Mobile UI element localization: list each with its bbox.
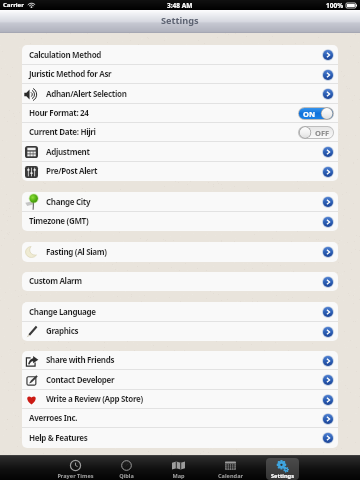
staticText: Contact Developer <box>46 374 115 385</box>
staticText: Help & Features <box>29 432 88 443</box>
staticText: 100% <box>326 1 344 10</box>
button[interactable]: Hour Format: 24 <box>22 104 338 123</box>
other: Open <box>322 88 334 100</box>
staticText: Calculation Method <box>29 49 102 60</box>
staticText: Qibla <box>119 472 134 480</box>
staticText: Juristic Method for Asr <box>29 68 112 79</box>
staticText: Averroes Inc. <box>29 412 78 423</box>
other: Open <box>322 246 334 258</box>
staticText: Map <box>172 472 185 480</box>
staticText: Settings <box>161 14 199 27</box>
staticText: Change Language <box>29 306 96 317</box>
staticText: OFF <box>315 128 330 138</box>
staticText: Share with Friends <box>46 354 115 365</box>
staticText: Pre/Post Alert <box>46 165 98 176</box>
staticText: Prayer Times <box>57 472 94 480</box>
other: Open <box>322 413 334 425</box>
staticText: ON <box>303 109 316 119</box>
staticText: 3:48 AM <box>167 1 193 10</box>
button[interactable]: Averroes Inc. <box>22 409 338 428</box>
staticText: Adjustment <box>46 146 90 157</box>
button[interactable]: Settings <box>256 455 308 480</box>
button[interactable]: Calculation Method <box>22 45 338 65</box>
other: Open <box>322 69 334 81</box>
button[interactable]: Qibla <box>101 455 152 480</box>
other: Open <box>322 146 334 158</box>
other: Open <box>322 432 334 444</box>
button[interactable]: Map <box>152 455 204 480</box>
staticText: Settings <box>271 472 294 480</box>
other: Open <box>322 355 334 367</box>
button[interactable]: Share with Friends <box>22 351 338 370</box>
other: Open <box>322 374 334 386</box>
other: Open <box>322 49 334 61</box>
staticText: Hour Format: 24 <box>29 107 89 118</box>
staticText: Adhan/Alert Selection <box>46 88 127 99</box>
button[interactable]: Timezone (GMT) <box>22 212 338 231</box>
button[interactable]: Write a Review (App Store) <box>22 390 338 409</box>
staticText: Change City <box>46 196 91 207</box>
staticText: Fasting (Al Siam) <box>46 246 107 257</box>
staticText: Calendar <box>218 472 243 480</box>
button[interactable]: Juristic Method for Asr <box>22 65 338 84</box>
button[interactable]: Prayer Times <box>50 455 101 480</box>
staticText: Custom Alarm <box>29 275 82 286</box>
button[interactable]: On <box>298 107 334 120</box>
button[interactable]: Pre/Post Alert <box>22 162 338 181</box>
other: Open <box>322 196 334 208</box>
button[interactable]: Current Date: Hijri <box>22 123 338 142</box>
staticText: Carrier <box>3 1 24 9</box>
staticText: Current Date: Hijri <box>29 126 96 137</box>
button[interactable]: Help & Features <box>22 428 338 448</box>
button[interactable]: Off <box>298 126 334 139</box>
button[interactable]: Change City <box>22 192 338 212</box>
button[interactable]: Adhan/Alert Selection <box>22 84 338 104</box>
other: Open <box>322 394 334 406</box>
other: Open <box>322 276 334 288</box>
button[interactable]: Custom Alarm <box>22 272 338 291</box>
other: Open <box>322 306 334 318</box>
staticText: Write a Review (App Store) <box>46 393 143 404</box>
button[interactable]: Graphics <box>22 322 338 341</box>
staticText: Graphics <box>46 325 79 336</box>
button[interactable]: Change Language <box>22 302 338 322</box>
button[interactable]: Adjustment <box>22 142 338 162</box>
staticText: Timezone (GMT) <box>29 215 89 226</box>
other: Open <box>322 166 334 178</box>
button[interactable]: Fasting (Al Siam) <box>22 242 338 262</box>
other: Open <box>322 216 334 228</box>
button[interactable]: Calendar <box>204 455 256 480</box>
other: Open <box>322 326 334 338</box>
button[interactable]: Contact Developer <box>22 370 338 390</box>
